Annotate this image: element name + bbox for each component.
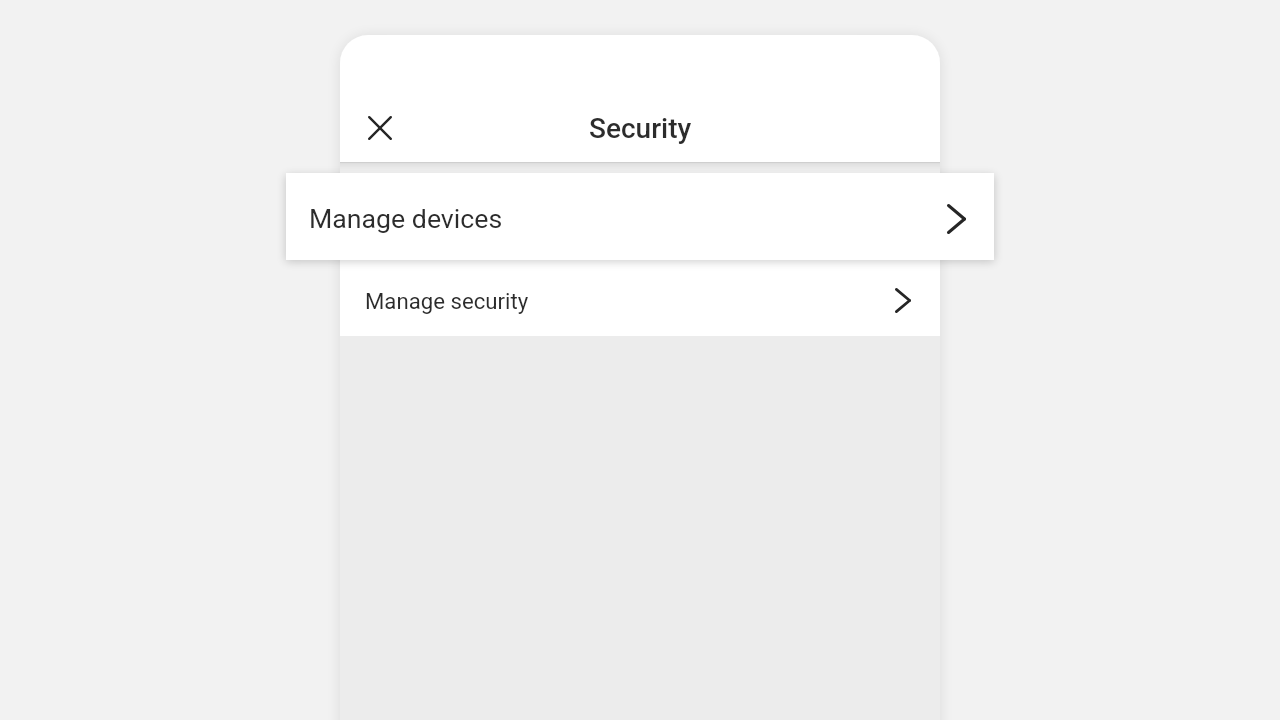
staticText: Security: [589, 112, 692, 145]
staticText: Manage security: [365, 288, 529, 314]
button[interactable]: Manage devices: [286, 173, 994, 260]
button[interactable]: Manage security: [340, 261, 940, 336]
button[interactable]: Close: [356, 104, 404, 152]
staticText: Manage devices: [309, 203, 503, 234]
